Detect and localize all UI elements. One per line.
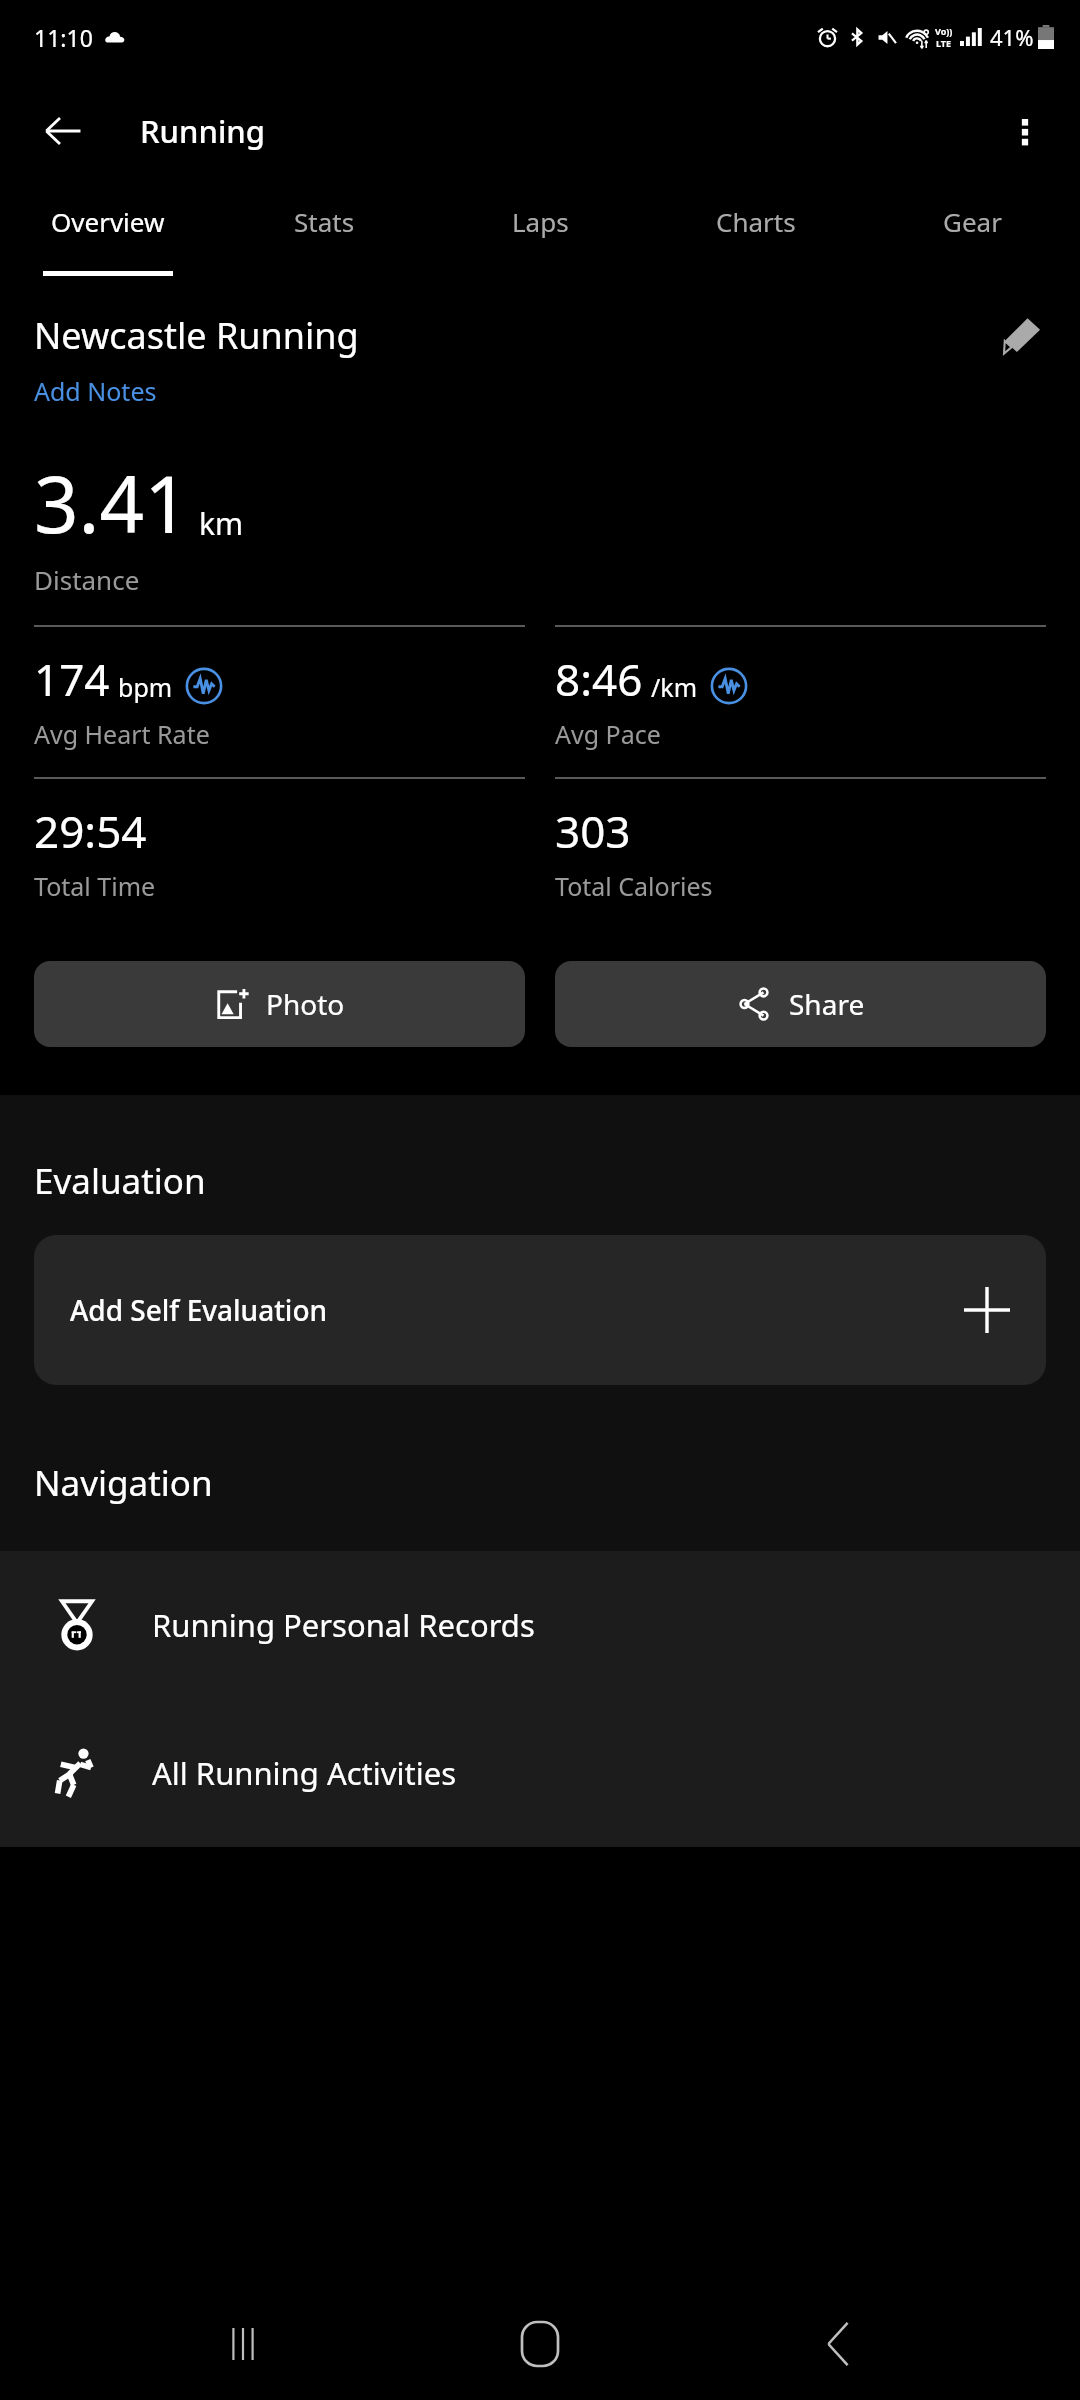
- staticText: Vo)): [935, 25, 953, 37]
- button[interactable]: Running Personal Records: [0, 1551, 1080, 1699]
- staticText: km: [199, 503, 244, 544]
- staticText: 3.41: [34, 450, 189, 556]
- button[interactable]: 8:46: [555, 625, 1046, 777]
- button[interactable]: Back: [30, 98, 96, 164]
- staticText: 174: [34, 649, 110, 709]
- staticText: 11:10: [34, 22, 93, 53]
- staticText: 8:46: [555, 649, 643, 709]
- staticText: 41%: [990, 22, 1034, 52]
- button[interactable]: Photo: [34, 961, 525, 1047]
- staticText: Add Notes: [34, 374, 157, 408]
- staticText: Overview: [51, 204, 165, 239]
- button[interactable]: 303: [555, 777, 1046, 929]
- staticText: Running Personal Records: [152, 1604, 535, 1646]
- staticText: 29:54: [34, 801, 147, 861]
- staticText: Gear: [943, 204, 1002, 239]
- staticText: Total Calories: [555, 869, 713, 903]
- button[interactable]: Add Self Evaluation: [34, 1235, 1046, 1385]
- button[interactable]: Stats: [216, 188, 432, 280]
- staticText: Running: [140, 110, 265, 152]
- staticText: Charts: [716, 204, 796, 239]
- button[interactable]: Back: [783, 2289, 893, 2399]
- staticText: Newcastle Running: [34, 311, 994, 360]
- staticText: Avg Pace: [555, 717, 661, 751]
- staticText: /km: [651, 670, 698, 704]
- staticText: Share: [789, 985, 865, 1023]
- button[interactable]: Home: [485, 2289, 595, 2399]
- button[interactable]: Gear: [864, 188, 1080, 280]
- button[interactable]: Overview: [0, 188, 216, 280]
- staticText: Total Time: [34, 869, 156, 903]
- staticText: 303: [555, 801, 631, 861]
- button[interactable]: 29:54: [34, 777, 525, 929]
- staticText: Add Self Evaluation: [70, 1291, 328, 1329]
- staticText: Navigation: [34, 1459, 213, 1507]
- staticText: Photo: [266, 985, 345, 1023]
- staticText: LTE: [936, 37, 952, 49]
- staticText: Distance: [34, 562, 140, 597]
- button[interactable]: Charts: [648, 188, 864, 280]
- button[interactable]: 174: [34, 625, 525, 777]
- staticText: Stats: [294, 204, 355, 239]
- staticText: Evaluation: [34, 1157, 206, 1205]
- staticText: Laps: [512, 204, 569, 239]
- button[interactable]: All Running Activities: [0, 1699, 1080, 1847]
- button[interactable]: Add Notes: [34, 374, 157, 408]
- button[interactable]: More options: [992, 98, 1058, 164]
- staticText: bpm: [118, 670, 173, 704]
- button[interactable]: Laps: [432, 188, 648, 280]
- staticText: Avg Heart Rate: [34, 717, 210, 751]
- button[interactable]: Edit: [994, 306, 1052, 364]
- button[interactable]: Recent apps: [188, 2289, 298, 2399]
- button[interactable]: Share: [555, 961, 1046, 1047]
- staticText: All Running Activities: [152, 1752, 457, 1794]
